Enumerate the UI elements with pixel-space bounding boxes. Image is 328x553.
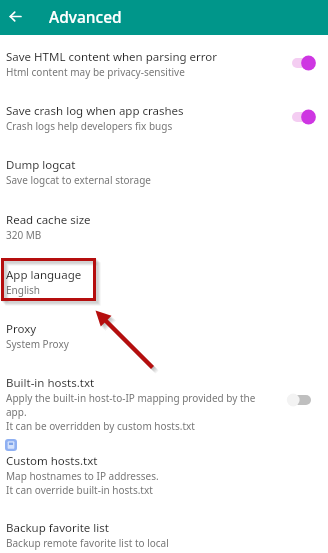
button[interactable]: Input method badge: [5, 439, 17, 451]
staticText: It can be overridden by custom hosts.txt: [6, 419, 195, 433]
button[interactable]: Custom hosts.txt: [0, 450, 328, 498]
button[interactable]: App language: [0, 264, 328, 298]
staticText: Save crash log when app crashes: [6, 103, 184, 119]
staticText: Backup favorite list: [6, 520, 109, 536]
staticText: Backup remote favorite list to local: [6, 536, 169, 550]
staticText: Read cache size: [6, 212, 91, 228]
button[interactable]: Dump logcat: [0, 154, 328, 188]
staticText: Built-in hosts.txt: [6, 375, 95, 391]
staticText: Map hostnames to IP addresses.: [6, 469, 159, 483]
staticText: Dump logcat: [6, 157, 76, 173]
staticText: System Proxy: [6, 337, 69, 351]
staticText: Apply the built-in host-to-IP mapping pr…: [6, 391, 256, 405]
staticText: English: [6, 283, 41, 297]
staticText: Save HTML content when parsing error: [6, 49, 218, 65]
button[interactable]: Proxy: [0, 318, 328, 352]
staticText: It can override built-in hosts.txt: [6, 483, 153, 497]
button[interactable]: Backup favorite list: [0, 517, 328, 551]
staticText: 320 MB: [6, 228, 42, 242]
staticText: Proxy: [6, 321, 37, 337]
button[interactable]: Save crash log when app crashes: [0, 100, 328, 134]
staticText: Advanced: [49, 6, 122, 27]
staticText: Save logcat to external storage: [6, 173, 151, 187]
staticText: App language: [6, 267, 82, 283]
staticText: app.: [6, 405, 27, 419]
button[interactable]: Back: [0, 0, 32, 33]
staticText: Crash logs help developers fix bugs: [6, 119, 173, 133]
staticText: Custom hosts.txt: [6, 453, 98, 469]
button[interactable]: Built-in hosts.txt: [0, 372, 328, 434]
staticText: Html content may be privacy-sensitive: [6, 65, 185, 79]
button[interactable]: Save HTML content when parsing error: [0, 46, 328, 80]
button[interactable]: Read cache size: [0, 209, 328, 243]
